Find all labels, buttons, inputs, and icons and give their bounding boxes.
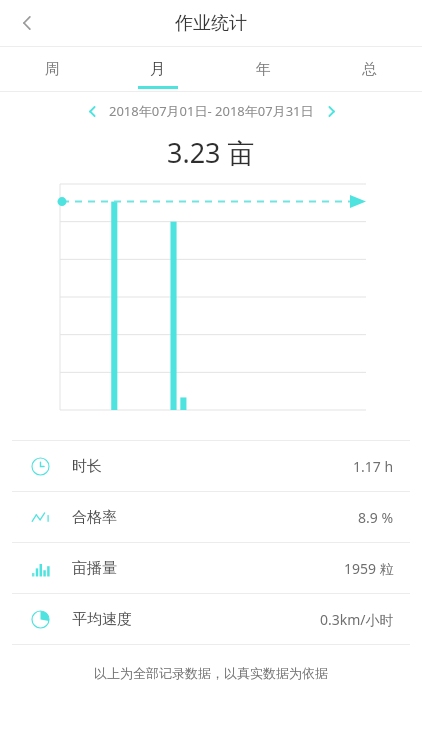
staticText: 周	[45, 60, 60, 79]
button[interactable]: 总	[316, 47, 422, 91]
button[interactable]: Previous period	[75, 94, 109, 128]
button[interactable]: 时长	[0, 441, 422, 491]
button[interactable]: Back	[6, 2, 48, 44]
staticText: 年	[256, 60, 271, 79]
button[interactable]: 平均速度	[0, 594, 422, 644]
staticText: 1959 粒	[344, 559, 394, 578]
staticText: 以上为全部记录数据，以真实数据为依据	[0, 665, 422, 681]
staticText: 时长	[72, 457, 102, 476]
staticText: 总	[362, 60, 377, 79]
staticText: 0.3km/小时	[320, 610, 394, 629]
button[interactable]: Next period	[314, 94, 348, 128]
staticText: 3.23 亩	[167, 134, 255, 171]
staticText: 平均速度	[72, 610, 132, 629]
button[interactable]: 合格率	[0, 492, 422, 542]
staticText: 1.17 h	[353, 457, 394, 476]
staticText: 合格率	[72, 508, 117, 527]
staticText: 8.9 %	[358, 508, 394, 527]
button[interactable]: 周	[0, 47, 105, 91]
button[interactable]: 亩播量	[0, 543, 422, 593]
staticText: 亩播量	[72, 559, 117, 578]
staticText: 月	[150, 60, 165, 79]
staticText: 作业统计	[175, 12, 247, 35]
button[interactable]: 月	[105, 47, 210, 91]
staticText: 2018年07月01日- 2018年07月31日	[109, 102, 314, 120]
button[interactable]: 年	[210, 47, 316, 91]
